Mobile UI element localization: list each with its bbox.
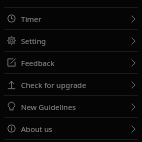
staticText: Setting xyxy=(21,36,131,46)
button[interactable]: New Guidelines xyxy=(0,96,142,117)
button[interactable]: Setting xyxy=(0,30,142,51)
staticText: About us xyxy=(21,124,131,134)
staticText: New Guidelines xyxy=(21,102,131,112)
button[interactable]: Check for upgrade xyxy=(0,74,142,95)
button[interactable]: Feedback xyxy=(0,52,142,73)
staticText: Feedback xyxy=(21,58,131,68)
button[interactable]: About us xyxy=(0,118,142,139)
staticText: Timer xyxy=(21,14,131,24)
staticText: Check for upgrade xyxy=(21,80,131,90)
button[interactable]: Timer xyxy=(0,8,142,29)
